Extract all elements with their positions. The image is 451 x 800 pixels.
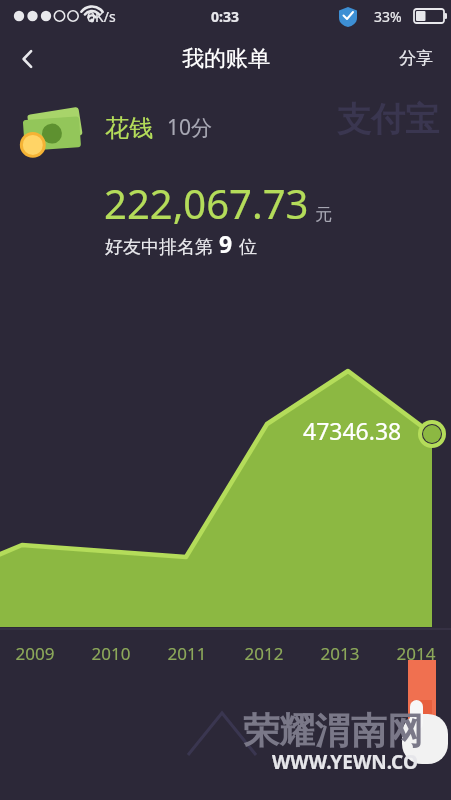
staticText: 2011 — [156, 642, 218, 665]
staticText: 0K/s — [87, 7, 116, 26]
staticText: 0:33 — [211, 7, 239, 26]
staticText: 2010 — [80, 642, 142, 665]
staticText: 荣耀渭南网 — [243, 708, 423, 753]
staticText: 47346.38 — [303, 415, 402, 446]
button[interactable]: Back — [0, 32, 56, 85]
staticText: 支付宝 — [337, 98, 439, 141]
staticText: 33% — [374, 7, 402, 26]
staticText: 元 — [315, 204, 332, 225]
staticText: 花钱 — [105, 113, 153, 143]
staticText: 10分 — [167, 113, 213, 142]
staticText: 2013 — [309, 642, 371, 665]
staticText: 2009 — [4, 642, 66, 665]
staticText: 2012 — [233, 642, 295, 665]
staticText: 位 — [239, 236, 257, 259]
button[interactable]: 分享 — [381, 32, 451, 85]
staticText: 2014 — [385, 642, 447, 665]
staticText: 9 — [213, 228, 239, 259]
staticText: 分享 — [399, 48, 433, 69]
staticText: 我的账单 — [182, 45, 270, 73]
staticText: 好友中排名第 — [105, 236, 213, 259]
staticText: WWW.YEWN.CO — [272, 749, 418, 775]
staticText: 222,067.73 — [104, 176, 309, 230]
